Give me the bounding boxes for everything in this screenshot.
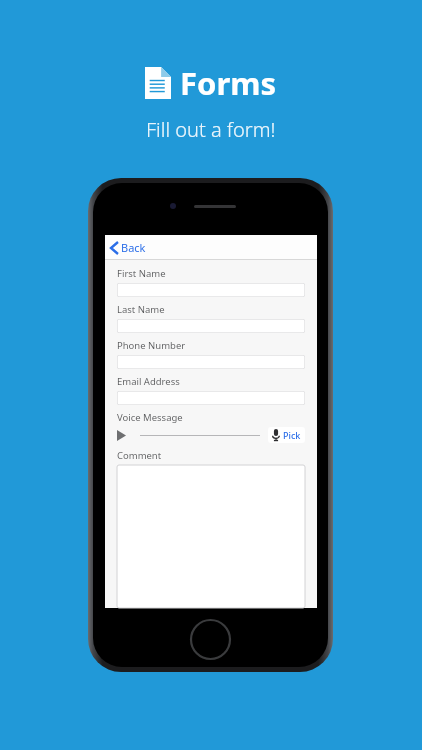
staticText: Comment [117, 449, 162, 462]
staticText: Last Name [117, 303, 165, 316]
staticText: Phone Number [117, 339, 186, 352]
button[interactable] [117, 465, 305, 608]
staticText: First Name [117, 267, 166, 280]
button[interactable]: Last Name [105, 303, 317, 339]
staticText: Back [121, 240, 146, 255]
staticText: Voice Message [117, 411, 183, 424]
other: Home [190, 619, 231, 660]
button[interactable]: First Name [105, 267, 317, 303]
button[interactable]: Play [117, 430, 126, 441]
button[interactable]: Email Address [105, 375, 317, 411]
button[interactable]: Pick [268, 427, 305, 443]
button[interactable]: Phone Number [105, 339, 317, 375]
staticText: Pick [283, 429, 301, 441]
staticText: Forms [180, 62, 277, 104]
staticText: Fill out a form! [146, 116, 276, 143]
button[interactable]: Back [105, 238, 154, 257]
staticText: Email Address [117, 375, 180, 388]
